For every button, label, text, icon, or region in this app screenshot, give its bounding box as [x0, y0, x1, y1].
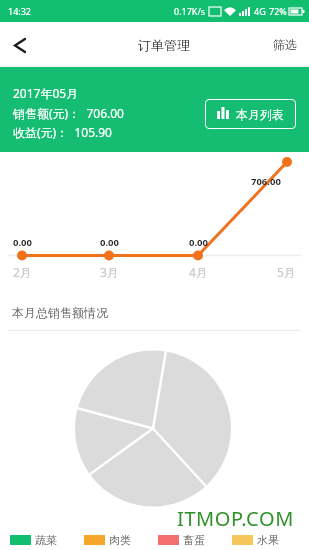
staticText: 畜蛋 [183, 533, 205, 547]
staticText: 72% [269, 5, 287, 17]
staticText: 0.00 [189, 236, 208, 249]
staticText: 706.00 [251, 175, 281, 188]
staticText: 0.00 [13, 236, 32, 249]
staticText: 2月 [13, 264, 32, 280]
staticText: ITMOP.COM [177, 505, 294, 532]
staticText: 0.00 [100, 236, 119, 249]
button[interactable]: 筛选 [273, 37, 297, 52]
staticText: 3月 [100, 264, 119, 280]
staticText: 2017年05月 [13, 85, 79, 101]
button[interactable]: 畜蛋 [158, 532, 205, 548]
staticText: 4月 [189, 264, 208, 280]
button[interactable]: 本月列表 [205, 99, 296, 129]
staticText: 销售额(元)： 706.00 [13, 105, 124, 121]
staticText: 筛选 [273, 37, 297, 52]
button[interactable]: 水果 [232, 532, 279, 548]
button[interactable]: 蔬菜 [10, 532, 57, 548]
staticText: 蔬菜 [35, 533, 57, 547]
staticText: 14:32 [8, 5, 32, 17]
button[interactable] [8, 33, 32, 57]
staticText: 收益(元)： 105.90 [13, 124, 112, 140]
staticText: 本月列表 [236, 107, 284, 122]
staticText: 0.17K/s [174, 5, 206, 17]
button[interactable]: 肉类 [84, 532, 131, 548]
staticText: 本月总销售额情况 [12, 305, 108, 320]
staticText: 5月 [277, 264, 296, 280]
staticText: 订单管理 [138, 37, 190, 53]
staticText: 肉类 [109, 533, 131, 547]
staticText: 4G [254, 5, 266, 17]
staticText: 水果 [257, 533, 279, 547]
